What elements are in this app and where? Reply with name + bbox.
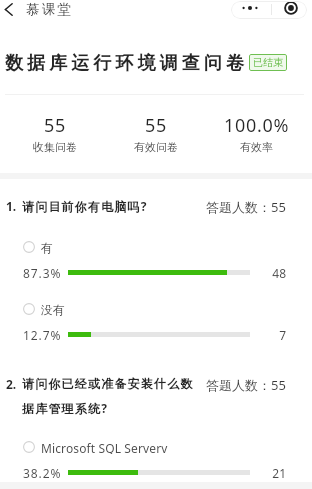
- staticText: 55: [145, 113, 167, 138]
- staticText: 7: [250, 327, 286, 343]
- staticText: 87.3%: [23, 265, 68, 281]
- button[interactable]: 没有: [23, 302, 286, 316]
- button[interactable]: Close mini program: [272, 1, 307, 19]
- staticText: 100.0%: [224, 113, 290, 138]
- button[interactable]: Back: [0, 0, 17, 18]
- staticText: 38.2%: [23, 465, 68, 481]
- staticText: Microsoft SQL Serverv: [41, 440, 168, 454]
- staticText: 慕课堂: [26, 1, 74, 18]
- staticText: 21: [250, 465, 286, 481]
- button[interactable]: More options: [231, 1, 271, 19]
- button[interactable]: Microsoft SQL Serverv: [23, 440, 286, 454]
- staticText: 1.: [6, 198, 22, 214]
- staticText: 答题人数：55: [206, 376, 286, 394]
- staticText: 数据库运行环境调查问卷: [5, 52, 249, 75]
- staticText: 有: [41, 240, 54, 254]
- staticText: 请问你已经或准备安装什么数据库管理系统?: [22, 376, 201, 416]
- staticText: 请问目前你有电脑吗?: [22, 198, 201, 214]
- button[interactable]: 有: [23, 240, 286, 254]
- staticText: 2.: [6, 376, 22, 392]
- staticText: 48: [250, 265, 286, 281]
- staticText: 有效率: [240, 140, 273, 154]
- staticText: 已结束: [253, 56, 283, 69]
- staticText: 55: [44, 113, 66, 138]
- staticText: 12.7%: [23, 327, 68, 343]
- staticText: 有效问卷: [134, 140, 178, 154]
- staticText: 答题人数：55: [206, 198, 286, 216]
- staticText: 没有: [41, 302, 66, 316]
- staticText: 收集问卷: [33, 140, 77, 154]
